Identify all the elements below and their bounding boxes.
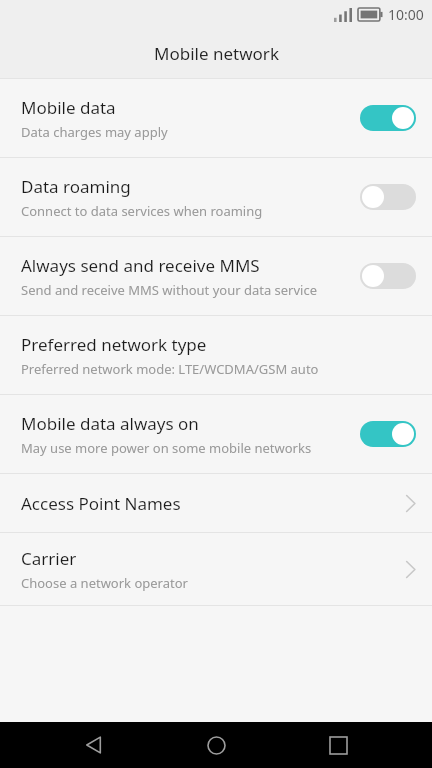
staticText: Connect to data services when roaming [21, 202, 263, 220]
button[interactable]: Preferred network type [0, 316, 432, 394]
button[interactable]: Data roaming [0, 158, 432, 236]
other: Open [405, 494, 416, 513]
button[interactable]: Access Point Names [0, 474, 432, 532]
staticText: Preferred network type [21, 333, 207, 356]
button[interactable]: Recent apps [310, 722, 366, 768]
button[interactable]: On [360, 105, 416, 131]
other: Open [405, 560, 416, 579]
staticText: Always send and receive MMS [21, 254, 260, 277]
staticText: Data charges may apply [21, 123, 168, 141]
staticText: 10:00 [388, 5, 424, 24]
staticText: Mobile network [154, 42, 279, 65]
staticText: Data roaming [21, 175, 131, 198]
staticText: Access Point Names [21, 492, 181, 515]
button[interactable]: Carrier [0, 533, 432, 605]
button[interactable]: Off [360, 184, 416, 210]
staticText: Preferred network mode: LTE/WCDMA/GSM au… [21, 360, 319, 378]
staticText: Choose a network operator [21, 574, 188, 592]
staticText: Send and receive MMS without your data s… [21, 281, 318, 299]
staticText: Carrier [21, 547, 77, 570]
button[interactable]: Mobile data always on [0, 395, 432, 473]
staticText: Mobile data [21, 96, 116, 119]
button[interactable]: Always send and receive MMS [0, 237, 432, 315]
button[interactable]: On [360, 421, 416, 447]
button[interactable]: Back [66, 722, 122, 768]
button[interactable]: Off [360, 263, 416, 289]
staticText: May use more power on some mobile networ… [21, 439, 312, 457]
button[interactable]: Mobile data [0, 79, 432, 157]
button[interactable]: Home [188, 722, 244, 768]
staticText: Mobile data always on [21, 412, 199, 435]
